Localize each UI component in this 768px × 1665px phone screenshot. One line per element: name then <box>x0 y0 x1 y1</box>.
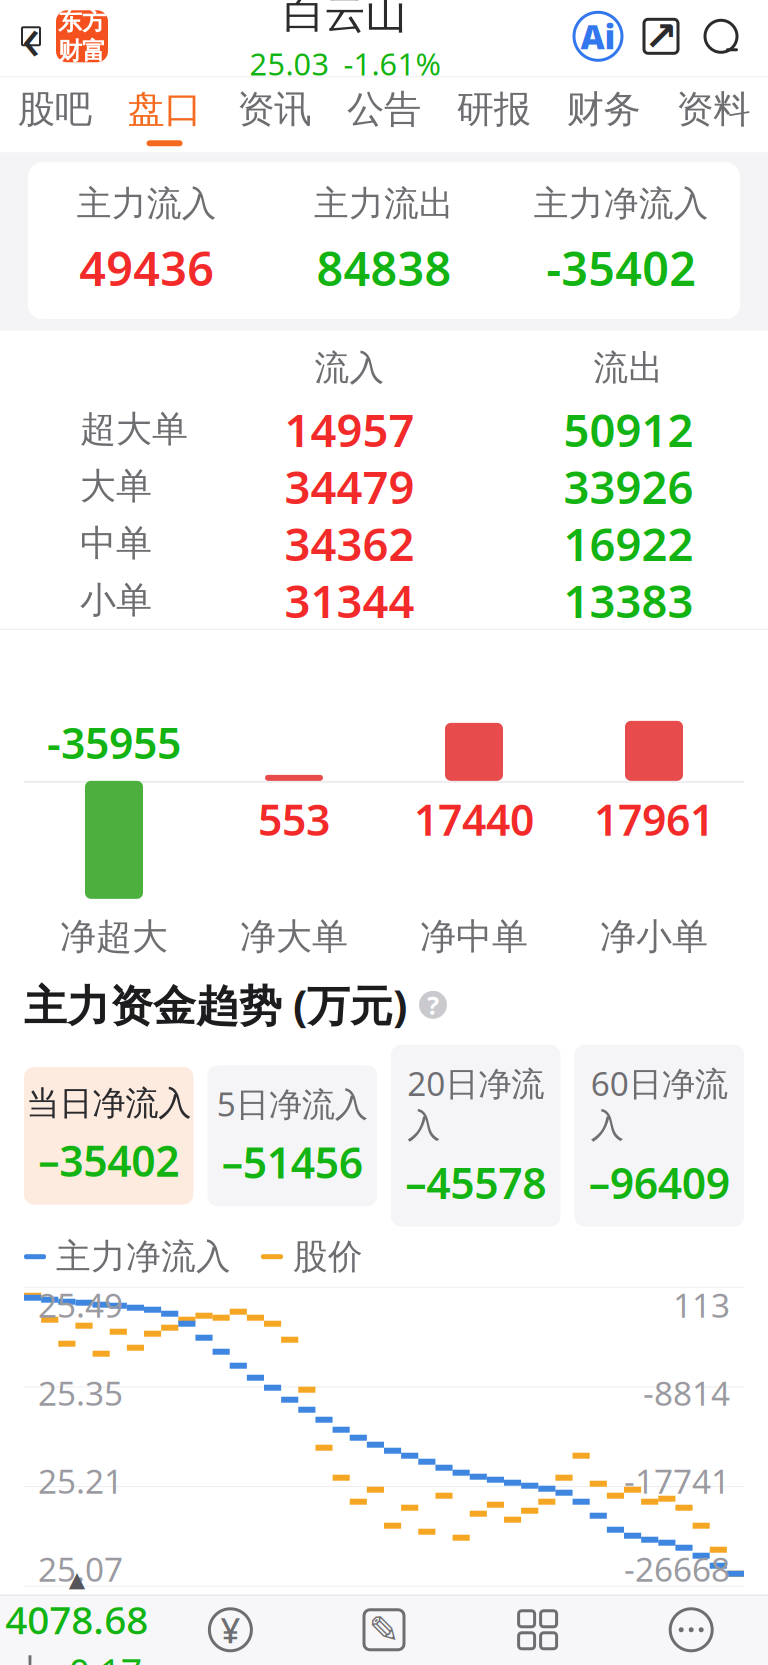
button[interactable]: ¥ <box>154 1597 307 1665</box>
staticText: 25.49 <box>38 1283 123 1327</box>
button[interactable]: 5日净流入 <box>207 1065 377 1206</box>
staticText: 5日净流入 <box>217 1081 368 1126</box>
staticText: 主力资金趋势 (万元) <box>24 976 407 1033</box>
staticText: 14957 <box>284 399 414 459</box>
staticText: ↗ <box>644 14 678 59</box>
staticText: 主力流出 <box>314 182 454 225</box>
button[interactable]: 返回 <box>0 0 118 76</box>
staticText: ? <box>427 988 439 1022</box>
staticText: ¥ <box>220 1607 240 1653</box>
staticText: 资料 <box>676 86 750 132</box>
staticText: -1.61% <box>343 43 440 84</box>
staticText: –45578 <box>405 1154 546 1211</box>
button[interactable]: 20日净流入 <box>391 1045 560 1227</box>
staticText: 当日净流入 <box>26 1083 191 1124</box>
staticText: 中单 <box>80 521 152 565</box>
staticText: 17961 <box>594 791 714 847</box>
button[interactable]: 设自选 <box>614 1597 768 1665</box>
button[interactable]: 研报 <box>439 76 549 152</box>
button[interactable]: 搜索 <box>698 13 744 59</box>
staticText: 净大单 <box>240 915 348 959</box>
staticText: 净小单 <box>600 915 708 959</box>
button[interactable]: 股吧 <box>0 76 110 152</box>
button[interactable]: 盘口 <box>110 76 219 152</box>
button[interactable]: 60日净流入 <box>574 1045 744 1227</box>
staticText: 4078.68 <box>5 1594 148 1645</box>
staticText: 研报 <box>457 86 531 132</box>
staticText: 净超大 <box>60 915 168 959</box>
staticText: 25.35 <box>38 1371 123 1415</box>
button[interactable]: 当日净流入 <box>24 1067 193 1205</box>
staticText: –96409 <box>589 1154 730 1211</box>
staticText: 主力净流入 <box>56 1235 231 1278</box>
staticText: 东方 <box>58 7 106 36</box>
staticText: -35402 <box>546 237 696 299</box>
staticText: 84838 <box>316 237 451 299</box>
staticText: 白云山 <box>283 0 406 39</box>
staticText: 31344 <box>284 570 414 630</box>
button[interactable]: ▲ <box>0 1597 154 1665</box>
staticText: 113 <box>673 1283 730 1327</box>
staticText: -0.17% <box>57 1647 142 1665</box>
staticText: 大单 <box>80 464 152 508</box>
button[interactable]: 公告 <box>329 76 439 152</box>
staticText: -26668 <box>624 1547 730 1591</box>
staticText: 25.03 <box>249 43 329 84</box>
staticText: 上证 <box>12 1651 49 1665</box>
staticText: 超大单 <box>80 407 188 451</box>
staticText: 净中单 <box>420 915 528 959</box>
staticText: –51456 <box>222 1134 363 1190</box>
staticText: 25.21 <box>38 1459 123 1503</box>
staticText: 资讯 <box>237 86 311 132</box>
staticText: ‹ <box>21 0 40 77</box>
button[interactable]: 财务 <box>549 76 658 152</box>
staticText: 33926 <box>563 456 693 516</box>
staticText: 553 <box>258 791 330 847</box>
button[interactable]: AI 助手 <box>572 10 624 62</box>
staticText: -17741 <box>624 1459 730 1503</box>
staticText: –35402 <box>38 1132 179 1189</box>
staticText: Ai <box>580 14 615 58</box>
staticText: 小单 <box>80 578 152 622</box>
button[interactable]: 资讯 <box>219 76 329 152</box>
staticText: 主力净流入 <box>534 182 709 225</box>
staticText: 16922 <box>563 513 693 573</box>
staticText: ▲ <box>69 1567 85 1592</box>
staticText: 34362 <box>284 513 414 573</box>
staticText: 流入 <box>314 347 384 389</box>
staticText: 主力流入 <box>77 182 217 225</box>
staticText: 50912 <box>563 399 693 459</box>
staticText: 财务 <box>566 86 640 132</box>
button[interactable]: 功能 <box>461 1597 614 1665</box>
staticText: 流出 <box>593 347 663 389</box>
staticText: 13383 <box>563 570 693 630</box>
staticText: 25.07 <box>38 1547 123 1591</box>
button[interactable]: 资料 <box>658 76 768 152</box>
staticText: 盘口 <box>128 86 202 132</box>
staticText: 股价 <box>293 1235 363 1278</box>
button[interactable]: 分享 <box>638 13 684 59</box>
staticText: 财富 <box>58 36 106 66</box>
staticText: 17440 <box>414 791 534 847</box>
staticText: -8814 <box>643 1371 730 1415</box>
staticText: 公告 <box>347 86 421 132</box>
staticText: 49436 <box>79 237 214 299</box>
staticText: 34479 <box>284 456 414 516</box>
staticText: 60日净流入 <box>591 1061 728 1146</box>
button[interactable]: ✎ <box>307 1597 461 1665</box>
staticText: 20日净流入 <box>407 1061 544 1146</box>
staticText: -35955 <box>47 714 181 771</box>
staticText: ✎ <box>368 1609 399 1651</box>
staticText: 股吧 <box>18 86 92 132</box>
